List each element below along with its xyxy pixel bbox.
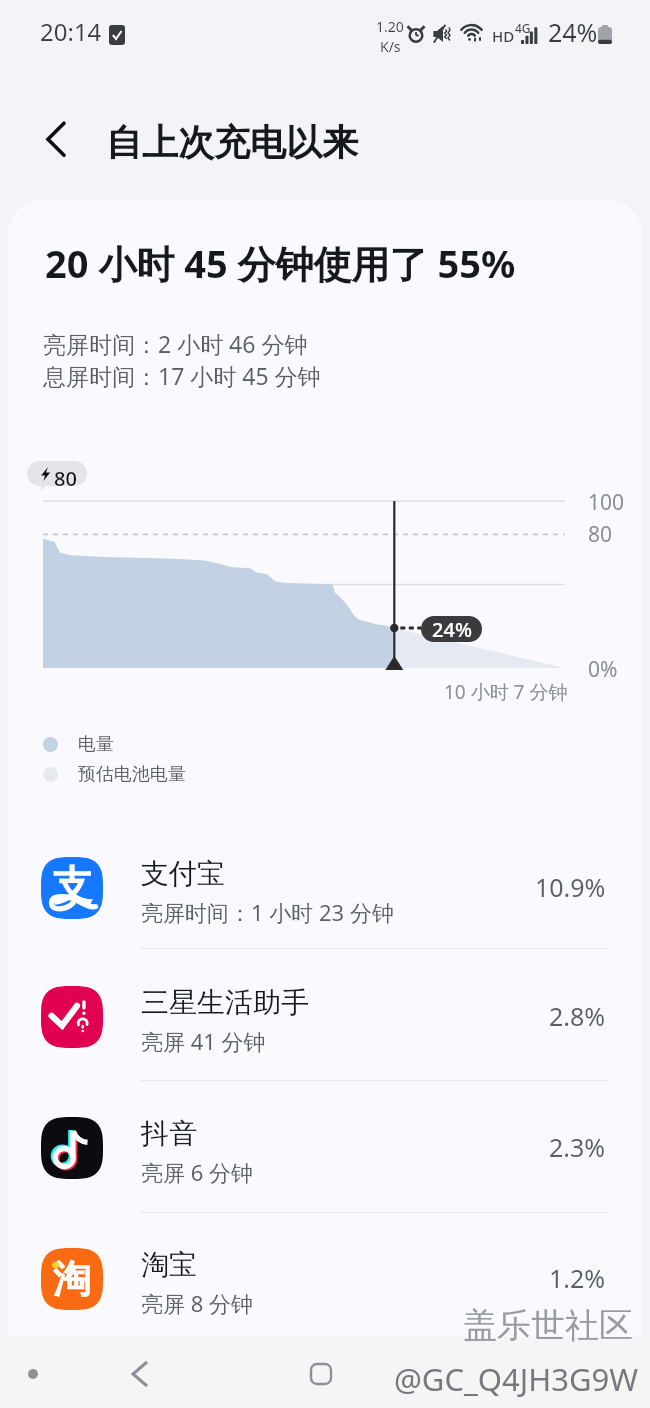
staticText: 三星生活助手 bbox=[141, 985, 309, 1020]
staticText: 10.9% bbox=[535, 870, 606, 904]
staticText: 1.20 bbox=[376, 17, 404, 36]
staticText: 自上次充电以来 bbox=[106, 120, 358, 165]
staticText: 预估电池电量 bbox=[78, 763, 186, 786]
staticText: 亮屏时间：2 小时 46 分钟 bbox=[43, 328, 308, 359]
staticText: 淘宝 bbox=[141, 1247, 197, 1282]
staticText: 80 bbox=[54, 465, 77, 492]
staticText: 2.8% bbox=[549, 999, 606, 1033]
button[interactable]: 三星生活助手 bbox=[0, 953, 650, 1081]
staticText: 亮屏 6 分钟 bbox=[141, 1157, 254, 1187]
staticText: 支付宝 bbox=[141, 856, 225, 891]
staticText: 80 bbox=[588, 520, 613, 549]
staticText: K/s bbox=[380, 37, 401, 56]
staticText: 1.2% bbox=[549, 1261, 606, 1295]
button[interactable]: 淘 bbox=[0, 1215, 650, 1343]
staticText: 24% bbox=[432, 616, 472, 642]
button[interactable]: 支 bbox=[0, 824, 650, 952]
staticText: 20 小时 45 分钟使用了 55% bbox=[45, 237, 516, 289]
staticText: 24% bbox=[548, 15, 598, 49]
staticText: 0% bbox=[588, 655, 618, 684]
button[interactable]: Back bbox=[31, 115, 81, 165]
staticText: 亮屏 8 分钟 bbox=[141, 1288, 254, 1318]
staticText: 盖乐世社区 bbox=[463, 1304, 633, 1347]
staticText: 2.3% bbox=[549, 1130, 606, 1164]
staticText: HD bbox=[492, 26, 515, 46]
staticText: 10 小时 7 分钟 bbox=[444, 679, 568, 705]
staticText: 4G bbox=[515, 20, 531, 36]
staticText: 支 bbox=[52, 860, 92, 910]
staticText: 亮屏时间：1 小时 23 分钟 bbox=[141, 897, 394, 927]
staticText: 亮屏 41 分钟 bbox=[141, 1026, 266, 1056]
button[interactable]: 抖音 bbox=[0, 1084, 650, 1212]
staticText: @GC_Q4JH3G9W bbox=[394, 1358, 639, 1400]
staticText: 100 bbox=[588, 488, 625, 517]
staticText: 20:14 bbox=[40, 15, 102, 48]
staticText: 息屏时间：17 小时 45 分钟 bbox=[43, 360, 321, 391]
staticText: 淘 bbox=[53, 1255, 91, 1303]
staticText: 电量 bbox=[78, 733, 114, 756]
staticText: 抖音 bbox=[141, 1116, 197, 1151]
